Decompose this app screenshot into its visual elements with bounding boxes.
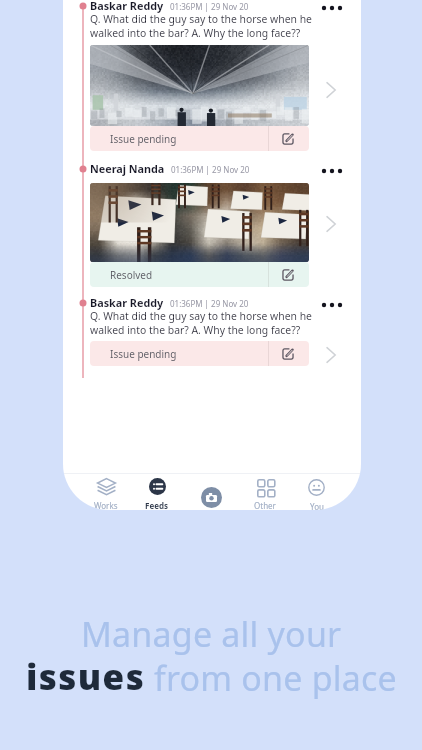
button[interactable]: Resolved xyxy=(90,262,309,287)
button[interactable]: Issue pending xyxy=(90,126,309,151)
button[interactable]: Works xyxy=(82,478,130,510)
staticText: Feeds xyxy=(145,500,169,510)
button[interactable]: You xyxy=(292,479,340,510)
staticText: 01:36PM | 29 Nov 20 xyxy=(170,1,249,12)
staticText: 01:36PM | 29 Nov 20 xyxy=(171,164,250,175)
button[interactable]: Camera xyxy=(201,487,222,508)
button[interactable]: Open details xyxy=(318,342,344,368)
button[interactable]: More options xyxy=(320,159,344,183)
staticText: Baskar Reddy xyxy=(90,0,164,13)
staticText: Issue pending xyxy=(110,132,177,146)
button[interactable]: More options xyxy=(320,0,344,20)
staticText: Baskar Reddy xyxy=(90,295,164,310)
button[interactable]: Open details xyxy=(318,77,344,103)
button[interactable]: More options xyxy=(320,293,344,317)
staticText: issues xyxy=(26,653,146,701)
staticText: Other xyxy=(254,500,276,510)
staticText: Issue pending xyxy=(110,347,177,361)
button[interactable]: Feeds xyxy=(133,478,181,510)
staticText: Works xyxy=(94,500,118,510)
staticText: Q. What did the guy say to the horse whe… xyxy=(90,309,312,337)
staticText: Q. What did the guy say to the horse whe… xyxy=(90,12,312,40)
staticText: You xyxy=(310,501,324,510)
staticText: Manage all your xyxy=(81,611,342,657)
staticText: from one place xyxy=(154,655,397,701)
staticText: Neeraj Nanda xyxy=(90,161,165,176)
button[interactable]: Issue pending xyxy=(90,341,309,366)
staticText: 01:36PM | 29 Nov 20 xyxy=(170,298,249,309)
button[interactable]: Open details xyxy=(318,211,344,237)
button[interactable]: Other xyxy=(241,479,289,510)
staticText: Resolved xyxy=(110,268,153,282)
